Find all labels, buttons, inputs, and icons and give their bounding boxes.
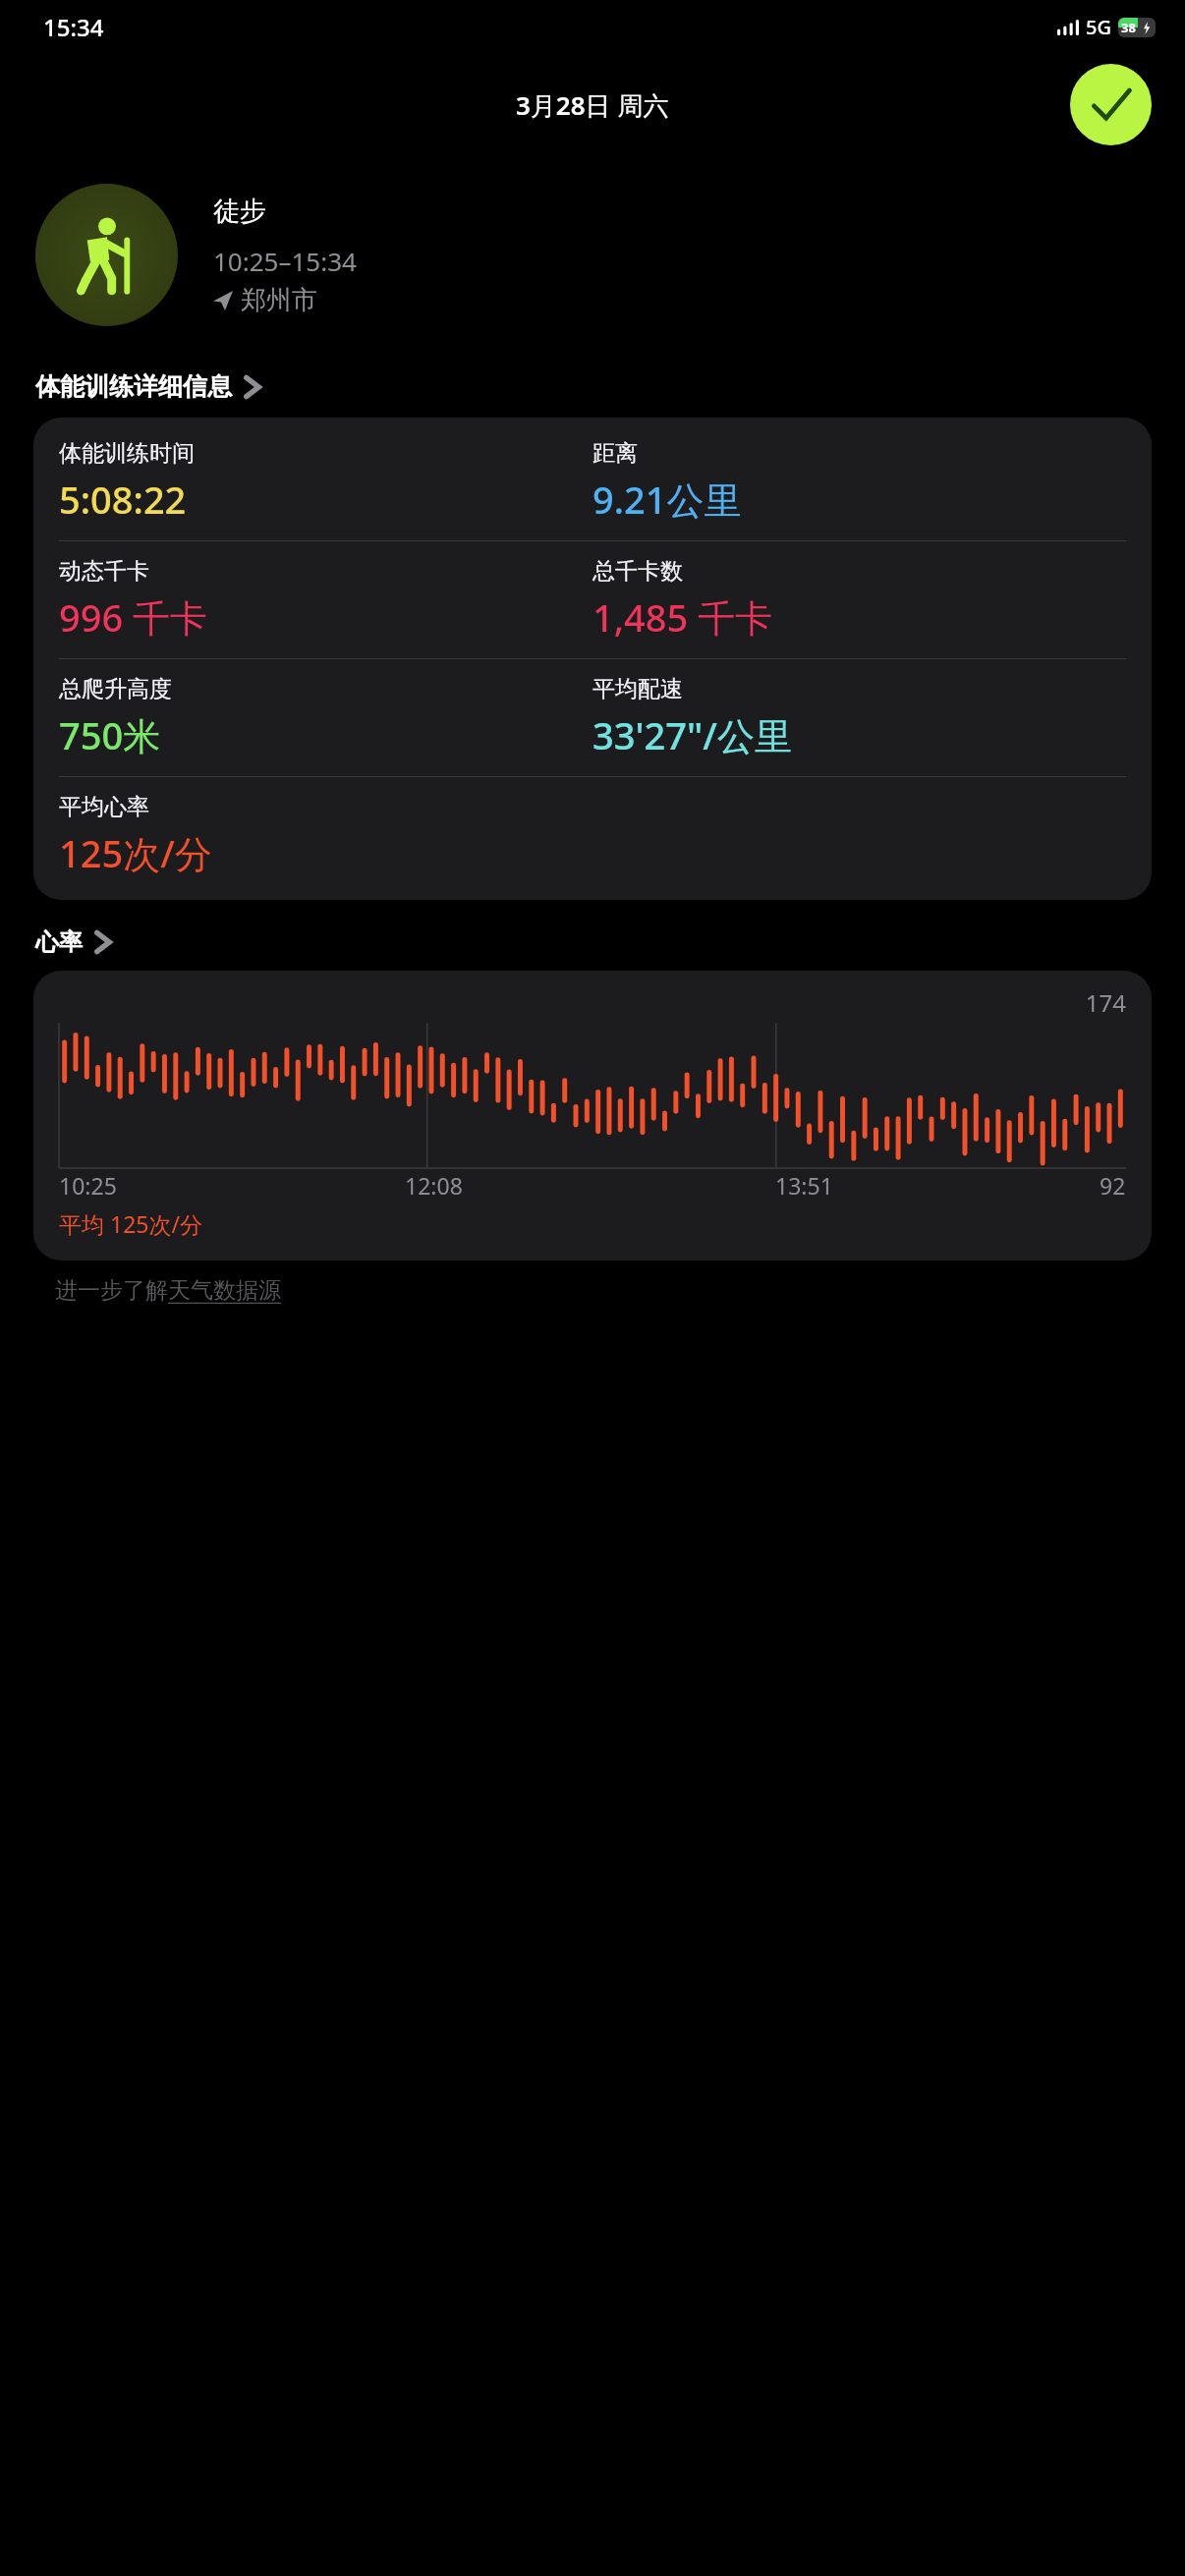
staticText: 750米 — [59, 709, 161, 760]
staticText: 平均心率 — [59, 793, 149, 821]
button[interactable]: Done — [1070, 64, 1152, 145]
staticText: 15:34 — [43, 11, 104, 43]
staticText: 动态千卡 — [59, 557, 149, 586]
button[interactable]: 体能训练详细信息 — [35, 371, 261, 402]
staticText: 总千卡数 — [592, 557, 683, 586]
staticText: 总爬升高度 — [59, 675, 172, 703]
staticText: 3月28日 周六 — [516, 87, 669, 123]
staticText: 174 — [59, 986, 1126, 1019]
staticText: 体能训练详细信息 — [35, 371, 232, 402]
staticText: 郑州市 — [241, 284, 317, 316]
staticText: 12:08 — [405, 1170, 463, 1201]
staticText: 体能训练时间 — [59, 439, 195, 468]
staticText: 9.21公里 — [592, 474, 742, 525]
staticText: 33'27"/公里 — [592, 709, 792, 760]
staticText: 5G — [1086, 14, 1111, 40]
staticText: 1,485 千卡 — [592, 591, 773, 643]
staticText: 进一步了解 — [55, 1276, 168, 1305]
staticText: 距离 — [592, 439, 638, 468]
button[interactable]: 心率 — [35, 927, 112, 957]
staticText: 996 千卡 — [59, 591, 208, 643]
staticText: 平均配速 — [592, 675, 683, 703]
staticText: 天气数据源 — [168, 1276, 281, 1305]
button[interactable]: 174 — [33, 971, 1152, 1260]
staticText: 38 — [1121, 19, 1136, 36]
button[interactable]: 体能训练时间 — [33, 418, 1152, 900]
staticText: 平均 125次/分 — [59, 1208, 203, 1239]
staticText: 心率 — [35, 927, 83, 957]
staticText: 13:51 — [775, 1170, 833, 1201]
staticText: 92 — [1100, 1170, 1126, 1201]
staticText: 徒步 — [213, 195, 266, 228]
staticText: 5:08:22 — [59, 474, 187, 525]
staticText: 10:25 — [59, 1170, 117, 1201]
staticText: 10:25–15:34 — [213, 244, 357, 278]
staticText: 125次/分 — [59, 827, 212, 878]
button[interactable]: 进一步了解 — [55, 1276, 281, 1305]
